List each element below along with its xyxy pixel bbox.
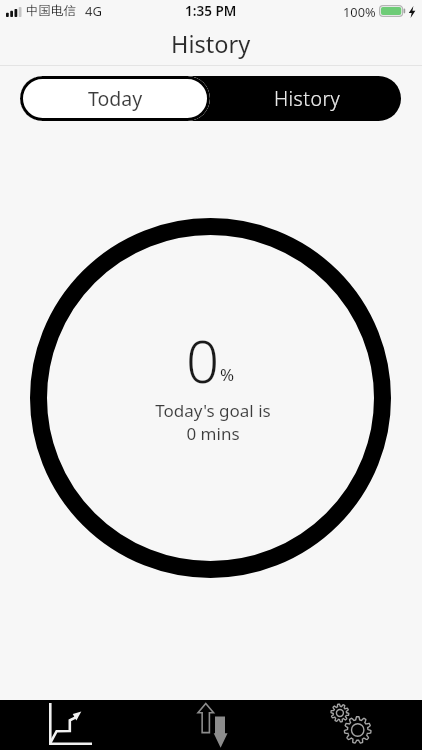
staticText: History (171, 28, 251, 60)
staticText: Today's goal is (155, 399, 271, 422)
button[interactable]: History (210, 76, 401, 121)
staticText: 4G (85, 2, 102, 20)
button[interactable]: Transfer (140, 700, 281, 750)
staticText: 1:35 PM (185, 2, 237, 20)
staticText: 中国电信 (26, 3, 76, 19)
staticText: Today (88, 85, 143, 112)
staticText: 0 mins (186, 422, 240, 445)
staticText: History (274, 85, 341, 112)
button[interactable]: Today (20, 76, 210, 121)
staticText: % (220, 363, 235, 386)
staticText: 0 (186, 321, 220, 400)
button[interactable]: Settings (281, 700, 422, 750)
staticText: 100% (343, 3, 376, 20)
button[interactable]: Statistics (0, 700, 140, 750)
